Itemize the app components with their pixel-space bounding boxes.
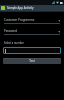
staticText: Test xyxy=(29,59,35,63)
staticText: Password xyxy=(4,29,18,33)
staticText: Sample App Activity xyxy=(7,6,34,10)
other: App icon xyxy=(1,6,5,10)
button[interactable]: Customer Programme xyxy=(4,18,60,24)
button[interactable]: Test xyxy=(3,58,61,64)
button[interactable]: Password xyxy=(4,29,60,35)
button[interactable] xyxy=(3,47,61,54)
staticText: Customer Programme xyxy=(4,18,35,22)
other: Open dropdown xyxy=(58,20,60,22)
staticText: Select a number xyxy=(4,41,24,45)
other: Open dropdown xyxy=(58,31,60,33)
